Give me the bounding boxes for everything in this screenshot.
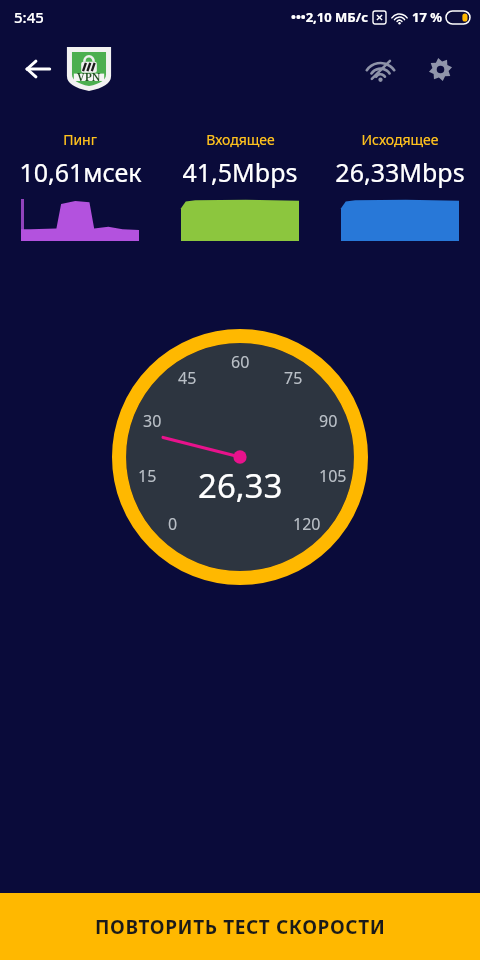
staticText: 75 (284, 367, 303, 389)
button[interactable]: Network (358, 47, 402, 91)
staticText: 105 (319, 465, 347, 487)
staticText: 30 (143, 410, 162, 432)
staticText: 90 (319, 410, 338, 432)
staticText: Пинг (63, 130, 97, 149)
button[interactable]: Settings (418, 47, 462, 91)
staticText: •••2,10 МБ/с (291, 8, 368, 26)
staticText: 10,61мсек (19, 155, 142, 189)
staticText: 60 (231, 351, 250, 373)
button[interactable]: Back (14, 45, 62, 93)
staticText: Входящее (206, 130, 275, 149)
staticText: 41,5Mbps (182, 155, 298, 189)
staticText: 120 (293, 513, 321, 535)
staticText: 17 % (412, 8, 442, 26)
staticText: 5:45 (14, 7, 44, 27)
staticText: 15 (138, 465, 157, 487)
staticText: 26,33 (198, 463, 283, 508)
staticText: 0 (168, 513, 178, 535)
staticText: 26,33Mbps (335, 155, 465, 189)
staticText: Исходящее (361, 130, 439, 149)
staticText: VPN (77, 69, 101, 84)
button[interactable]: ПОВТОРИТЬ ТЕСТ СКОРОСТИ (0, 893, 480, 960)
staticText: 45 (178, 367, 197, 389)
staticText: ПОВТОРИТЬ ТЕСТ СКОРОСТИ (95, 914, 386, 940)
